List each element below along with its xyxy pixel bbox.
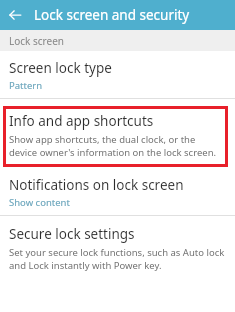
button[interactable]: Notifications on lock screen [0, 174, 235, 215]
button[interactable]: Secure lock settings [0, 216, 235, 278]
staticText: Screen lock type [9, 59, 112, 77]
staticText: Notifications on lock screen [9, 176, 184, 194]
staticText: Pattern [9, 79, 43, 92]
staticText: Lock screen [9, 34, 65, 48]
button[interactable]: Navigate up [0, 0, 30, 30]
button[interactable]: Screen lock type [0, 51, 235, 98]
staticText: Info and app shortcuts [9, 112, 154, 130]
button[interactable]: Info and app shortcuts [3, 106, 228, 167]
staticText: Set your secure lock functions, such as … [9, 246, 226, 272]
staticText: Lock screen and security [34, 6, 190, 24]
staticText: Show app shortcuts, the dual clock, or t… [9, 133, 222, 159]
staticText: Secure lock settings [9, 225, 135, 243]
staticText: Show content [9, 196, 70, 209]
